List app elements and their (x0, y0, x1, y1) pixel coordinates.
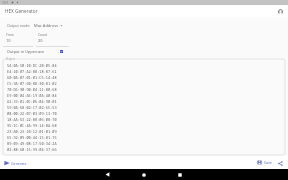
staticText: 59:0A:68:02:C7:02:65:53 (7, 105, 57, 110)
staticText: 95:1C:0C:4A:99:14:8A:68 (7, 123, 57, 128)
button[interactable]: Save (257, 160, 272, 165)
staticText: HEX Generator (5, 8, 38, 14)
staticText: Generate (11, 161, 27, 166)
staticText: From (6, 33, 14, 37)
button[interactable]: Info (276, 7, 285, 16)
staticText: Count (38, 33, 48, 37)
staticText: 18:AA:63:22:88:06:08:70 (7, 117, 57, 122)
staticText: 5A:0A:50:10:DC:20:05:84 (7, 63, 57, 68)
staticText: 10:1 (2, 1, 9, 5)
button[interactable]: Home (135, 169, 153, 180)
staticText: Output in Uppercase (7, 49, 45, 54)
staticText: 08:00:22:07:03:09:13:70 (7, 111, 57, 116)
staticText: 23:A0:23:10:12:01:01:09 (7, 129, 57, 134)
staticText: 70:D6:90:90:04:11:80:68 (7, 87, 57, 92)
button[interactable]: Back (98, 169, 116, 180)
staticText: 65:92:09:00:44:15:81:76 (7, 135, 57, 140)
button[interactable]: Generate (4, 160, 27, 166)
staticText: E4:10:07:A2:88:18:87:61 (7, 69, 57, 74)
button[interactable]: Recents (171, 169, 189, 180)
button[interactable]: Output in Uppercase (7, 49, 63, 54)
staticText: Output (6, 57, 15, 61)
staticText: A2:33:01:0C:06:04:90:01 (7, 99, 57, 104)
staticText: Output mode: (7, 23, 31, 28)
staticText: C5:9A:07:60:8D:30:81:02 (7, 81, 57, 86)
staticText: 60:0A:07:01:01:C5:14:48 (7, 75, 57, 80)
staticText: 10 (6, 38, 11, 43)
staticText: Save (264, 160, 272, 165)
staticText: Mac Address (34, 23, 58, 28)
staticText: 89:09:49:08:17:50:34:2A (7, 141, 57, 146)
button[interactable]: Share (276, 159, 284, 167)
staticText: 02:88:60:15:99:04:37:66 (7, 147, 57, 152)
staticText: 20 (38, 38, 43, 43)
staticText: E9:00:04:AE:19:0A:40:84 (7, 93, 57, 98)
button[interactable]: Mac Address (34, 23, 63, 28)
